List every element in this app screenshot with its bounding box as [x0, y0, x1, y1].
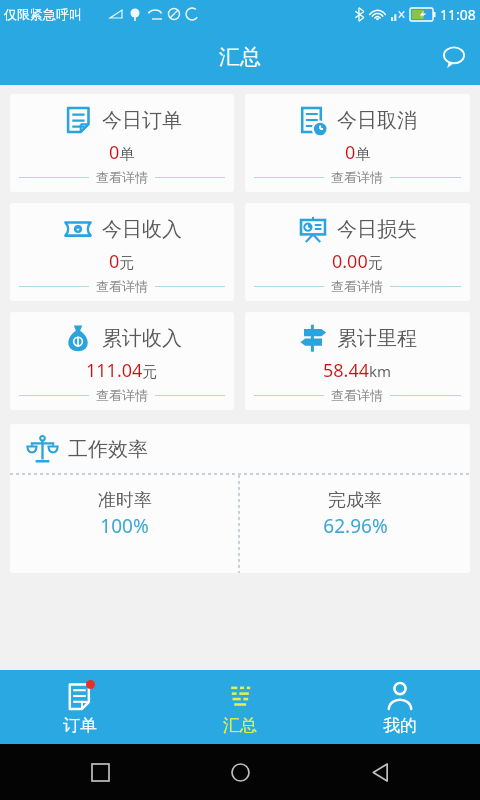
staticText: 0元	[109, 249, 135, 274]
staticText: 查看详情	[331, 387, 383, 403]
button[interactable]: 我的	[320, 670, 480, 744]
staticText: 今日损失	[337, 217, 417, 242]
staticText: 我的	[383, 715, 417, 736]
button[interactable]: Back	[360, 752, 400, 792]
staticText: 累计收入	[102, 326, 182, 351]
staticText: 查看详情	[331, 169, 383, 185]
button[interactable]: 累计收入	[10, 312, 234, 410]
staticText: 订单	[63, 715, 97, 736]
staticText: 仅限紧急呼叫	[4, 6, 82, 22]
staticText: 111.04元	[86, 358, 158, 383]
staticText: 累计里程	[337, 326, 417, 351]
button[interactable]: 完成率	[240, 475, 470, 573]
staticText: 今日收入	[102, 217, 182, 242]
staticText: 今日订单	[102, 108, 182, 133]
staticText: 0.00元	[332, 249, 383, 274]
staticText: 0单	[109, 140, 135, 165]
staticText: 查看详情	[96, 278, 148, 294]
staticText: 工作效率	[68, 437, 148, 462]
staticText: 58.44km	[323, 358, 392, 383]
button[interactable]: 今日取消	[245, 94, 470, 192]
staticText: 0单	[345, 140, 371, 165]
staticText: 62.96%	[323, 513, 388, 539]
button[interactable]: Home	[220, 752, 260, 792]
button[interactable]: 今日损失	[245, 203, 470, 301]
button[interactable]: 汇总	[160, 670, 320, 744]
staticText: 汇总	[223, 715, 257, 736]
staticText: 汇总	[219, 44, 261, 70]
staticText: 查看详情	[96, 387, 148, 403]
button[interactable]: 今日收入	[10, 203, 234, 301]
button[interactable]: 今日订单	[10, 94, 234, 192]
staticText: 今日取消	[337, 108, 417, 133]
staticText: 100%	[100, 513, 149, 539]
button[interactable]: Recents	[80, 752, 120, 792]
staticText: 查看详情	[331, 278, 383, 294]
button[interactable]: 订单	[0, 670, 160, 744]
staticText: 11:08	[440, 5, 476, 24]
staticText: 查看详情	[96, 169, 148, 185]
staticText: 准时率	[98, 489, 152, 512]
button[interactable]: Messages	[428, 31, 480, 83]
button[interactable]: 累计里程	[245, 312, 470, 410]
button[interactable]: 准时率	[10, 475, 239, 573]
staticText: 完成率	[328, 489, 382, 512]
